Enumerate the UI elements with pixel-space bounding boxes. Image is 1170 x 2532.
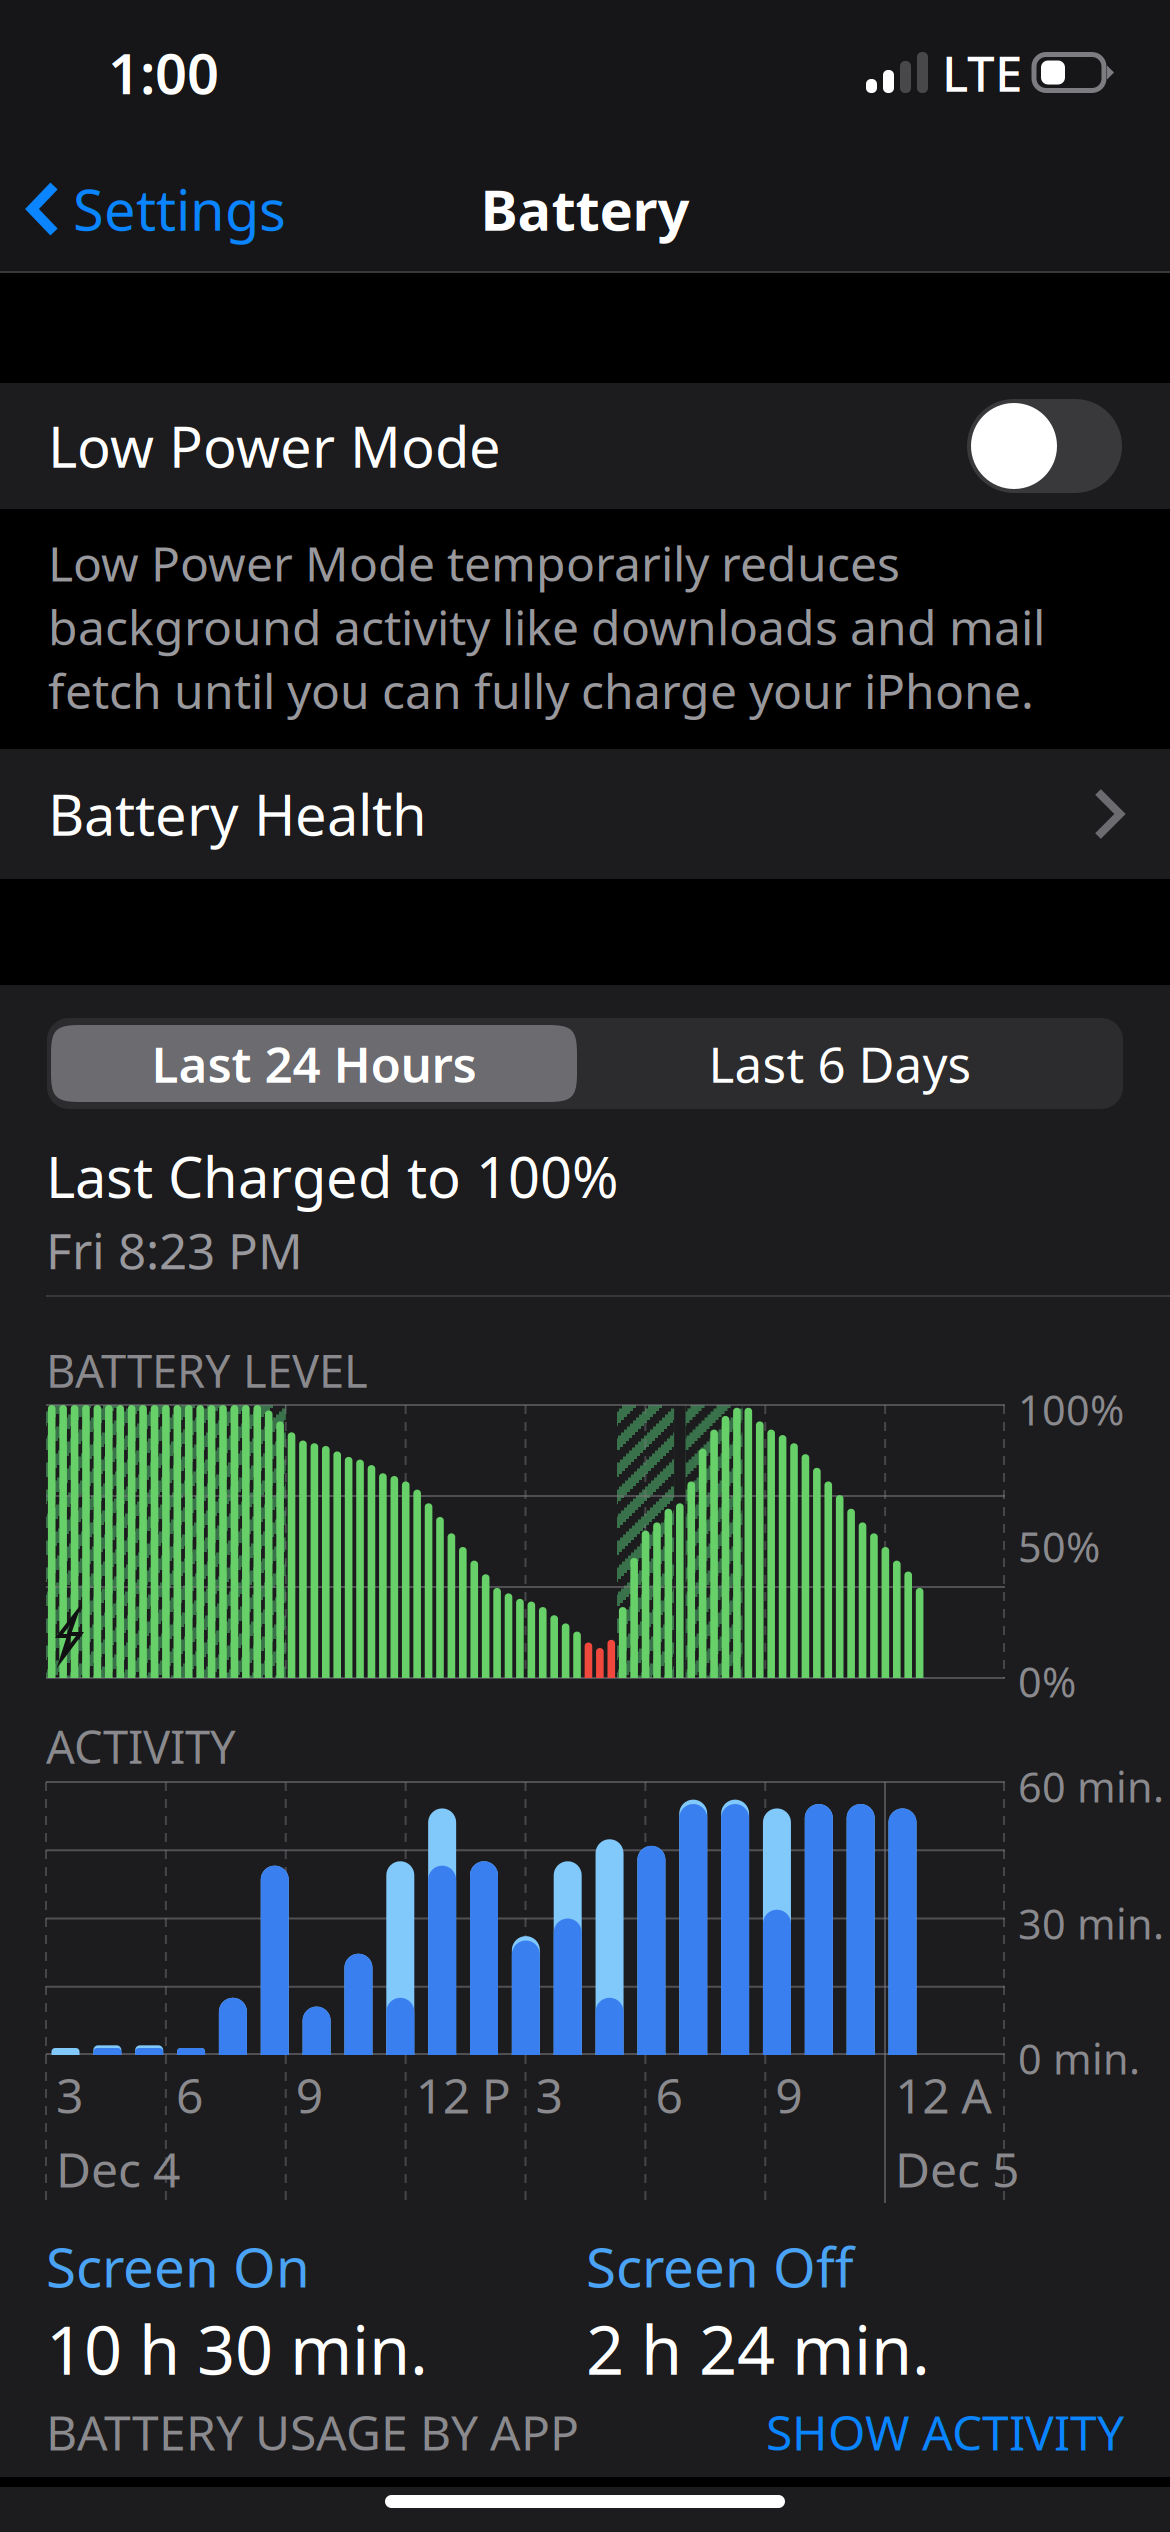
staticText: Dec 4 — [56, 2137, 180, 2201]
staticText: Battery Health — [48, 777, 427, 851]
staticText: 9 — [775, 2063, 802, 2127]
staticText: SHOW ACTIVITY — [766, 2400, 1124, 2464]
staticText: BATTERY LEVEL — [46, 1340, 368, 1400]
button[interactable]: Battery Health — [0, 749, 1170, 879]
button[interactable]: Low Power Mode — [0, 383, 1122, 493]
staticText: 50% — [1018, 1519, 1100, 1574]
staticText: 60 min. — [1018, 1759, 1164, 1814]
staticText: Settings — [73, 172, 286, 246]
staticText: Battery — [480, 172, 689, 246]
staticText: 12 P — [416, 2063, 511, 2127]
staticText: 1:00 — [108, 35, 219, 110]
staticText: Low Power Mode — [48, 409, 501, 483]
staticText: Low Power Mode temporarily reduces backg… — [48, 531, 1045, 722]
staticText: BATTERY USAGE BY APP — [46, 2400, 579, 2464]
staticText: Last Charged to 100% — [46, 1139, 619, 1213]
button[interactable]: Settings — [0, 145, 304, 273]
staticText: Last 24 Hours — [151, 1031, 476, 1096]
staticText: 0% — [1018, 1654, 1076, 1709]
staticText: Dec 5 — [895, 2137, 1019, 2201]
staticText: 3 — [56, 2063, 83, 2127]
staticText: 6 — [655, 2063, 682, 2127]
button[interactable]: Last 24 Hours — [51, 1025, 577, 1102]
staticText: 12 A — [895, 2063, 992, 2127]
staticText: 2 h 24 min. — [586, 2305, 930, 2393]
staticText: Screen On — [46, 2230, 310, 2303]
staticText: 100% — [1018, 1382, 1124, 1437]
button[interactable]: SHOW ACTIVITY — [766, 2400, 1124, 2464]
staticText: 10 h 30 min. — [46, 2305, 428, 2393]
staticText: Last 6 Days — [708, 1031, 971, 1096]
staticText: LTE — [942, 40, 1022, 105]
staticText: 3 — [535, 2063, 562, 2127]
staticText: 9 — [296, 2063, 323, 2127]
staticText: 6 — [176, 2063, 203, 2127]
staticText: 30 min. — [1018, 1896, 1164, 1951]
staticText: 0 min. — [1018, 2031, 1140, 2086]
staticText: ACTIVITY — [46, 1716, 236, 1776]
staticText: Fri 8:23 PM — [46, 1217, 303, 1283]
staticText: Screen Off — [586, 2230, 854, 2303]
button[interactable]: Last 6 Days — [577, 1025, 1103, 1102]
